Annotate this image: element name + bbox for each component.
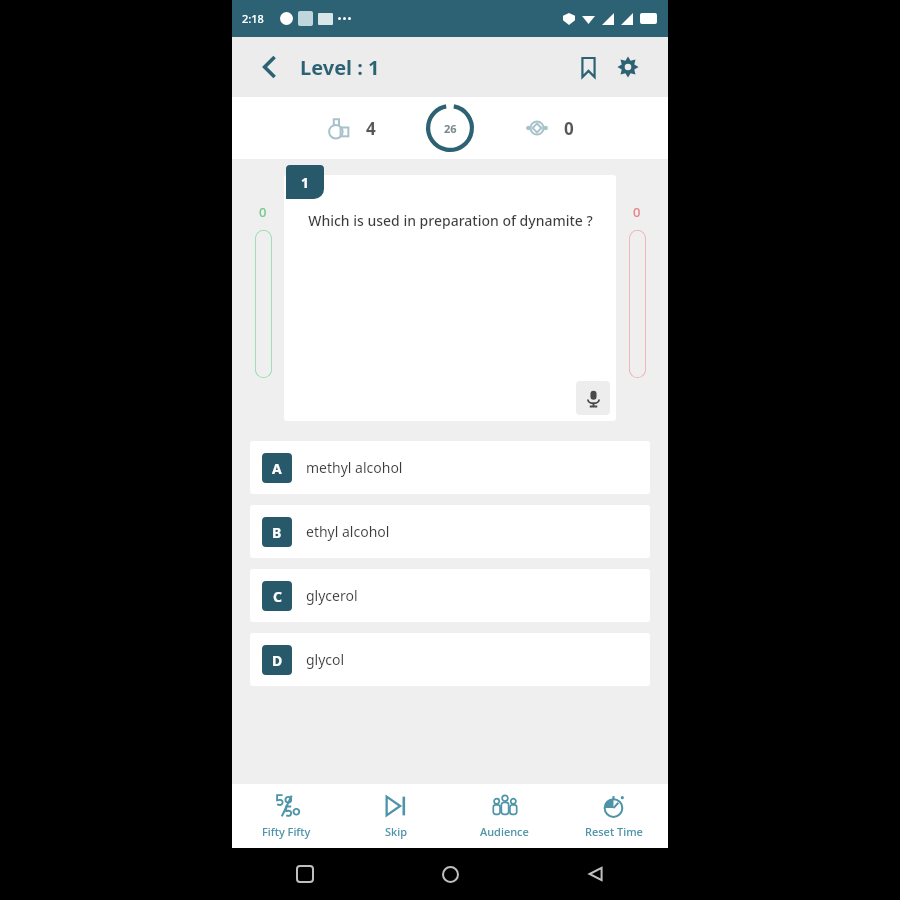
staticText: 0: [564, 117, 574, 140]
button[interactable]: Audience: [450, 784, 559, 848]
staticText: Level : 1: [300, 54, 380, 81]
button[interactable]: A: [250, 441, 650, 494]
button[interactable]: Voice input: [576, 381, 610, 415]
staticText: Audience: [480, 824, 529, 839]
staticText: 1: [301, 173, 310, 192]
staticText: Skip: [385, 824, 407, 839]
staticText: A: [272, 459, 282, 478]
button[interactable]: Which is used in preparation of dynamite…: [284, 175, 616, 421]
staticText: glycerol: [306, 586, 358, 605]
staticText: Fifty Fifty: [262, 824, 311, 839]
button[interactable]: 4: [320, 115, 382, 141]
button[interactable]: Home: [378, 848, 523, 900]
button[interactable]: Back: [523, 848, 668, 900]
button[interactable]: C: [250, 569, 650, 622]
staticText: ethyl alcohol: [306, 522, 390, 541]
staticText: D: [272, 651, 283, 670]
staticText: 26: [444, 121, 457, 136]
staticText: 0: [259, 203, 267, 221]
button[interactable]: Fifty Fifty: [232, 784, 341, 848]
staticText: C: [273, 587, 282, 606]
staticText: 4: [366, 117, 376, 140]
button[interactable]: Reset Time: [559, 784, 668, 848]
button[interactable]: B: [250, 505, 650, 558]
staticText: 2:18: [242, 11, 264, 26]
button[interactable]: Settings: [608, 47, 648, 87]
button[interactable]: D: [250, 633, 650, 686]
staticText: glycol: [306, 650, 345, 669]
staticText: Reset Time: [585, 824, 643, 839]
staticText: Which is used in preparation of dynamite…: [308, 211, 593, 230]
staticText: B: [272, 523, 282, 542]
staticText: 0: [633, 203, 641, 221]
button[interactable]: 0: [518, 115, 580, 141]
button[interactable]: Skip: [341, 784, 450, 848]
button[interactable]: Recents: [232, 848, 378, 900]
button[interactable]: Timer: [426, 104, 474, 152]
button[interactable]: Bookmark: [568, 47, 608, 87]
staticText: methyl alcohol: [306, 458, 403, 477]
button[interactable]: Back: [254, 50, 288, 84]
